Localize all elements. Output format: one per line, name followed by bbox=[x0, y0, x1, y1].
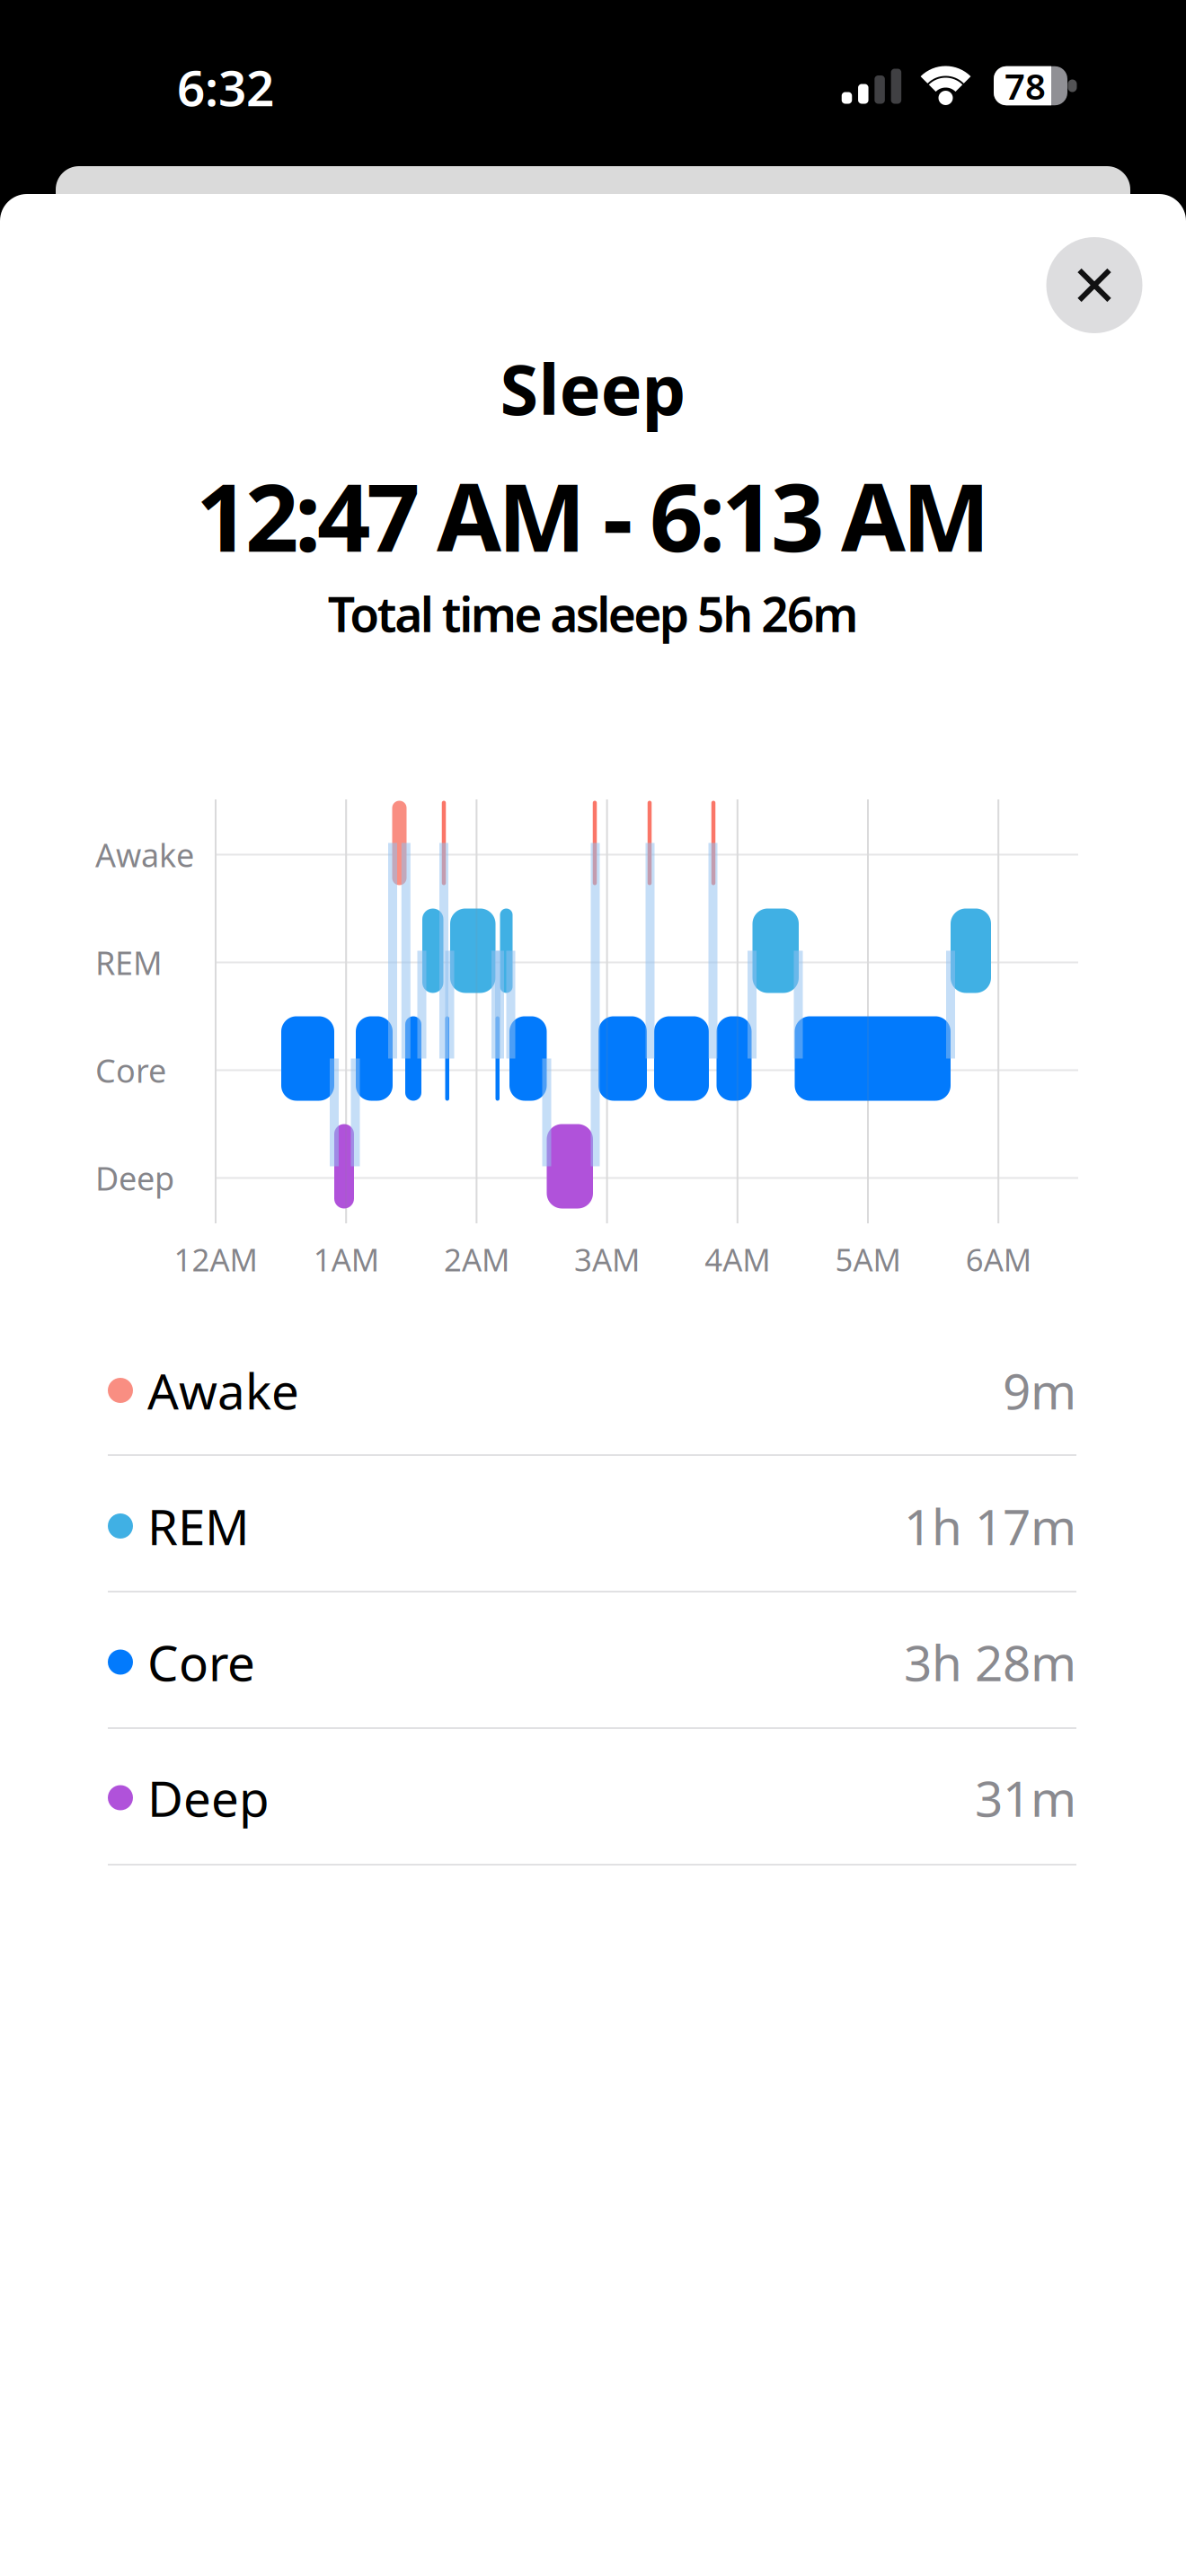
staticText: 1h 17m bbox=[904, 1493, 1076, 1559]
staticText: 6AM bbox=[966, 1239, 1031, 1280]
staticText: Awake bbox=[147, 1358, 299, 1423]
staticText: Total time asleep 5h 26m bbox=[328, 582, 858, 645]
staticText: 2AM bbox=[444, 1239, 509, 1280]
staticText: Core bbox=[95, 1049, 166, 1092]
staticText: 3h 28m bbox=[904, 1629, 1076, 1695]
staticText: 31m bbox=[975, 1765, 1076, 1830]
staticText: 3AM bbox=[574, 1239, 640, 1280]
button[interactable]: Close bbox=[1046, 237, 1142, 333]
staticText: Deep bbox=[95, 1157, 174, 1199]
staticText: REM bbox=[147, 1493, 250, 1559]
staticText: Sleep bbox=[500, 342, 686, 434]
staticText: Awake bbox=[95, 833, 194, 876]
staticText: 1AM bbox=[313, 1239, 379, 1280]
staticText: 12:47 AM - 6:13 AM bbox=[196, 453, 990, 578]
staticText: 6:32 bbox=[177, 55, 274, 120]
staticText: REM bbox=[95, 941, 163, 984]
staticText: Core bbox=[147, 1629, 255, 1695]
staticText: Deep bbox=[147, 1765, 270, 1830]
staticText: 12AM bbox=[174, 1239, 257, 1280]
staticText: 4AM bbox=[705, 1239, 770, 1280]
staticText: 78 bbox=[1005, 62, 1046, 110]
staticText: 5AM bbox=[835, 1239, 901, 1280]
staticText: 9m bbox=[1003, 1358, 1076, 1423]
